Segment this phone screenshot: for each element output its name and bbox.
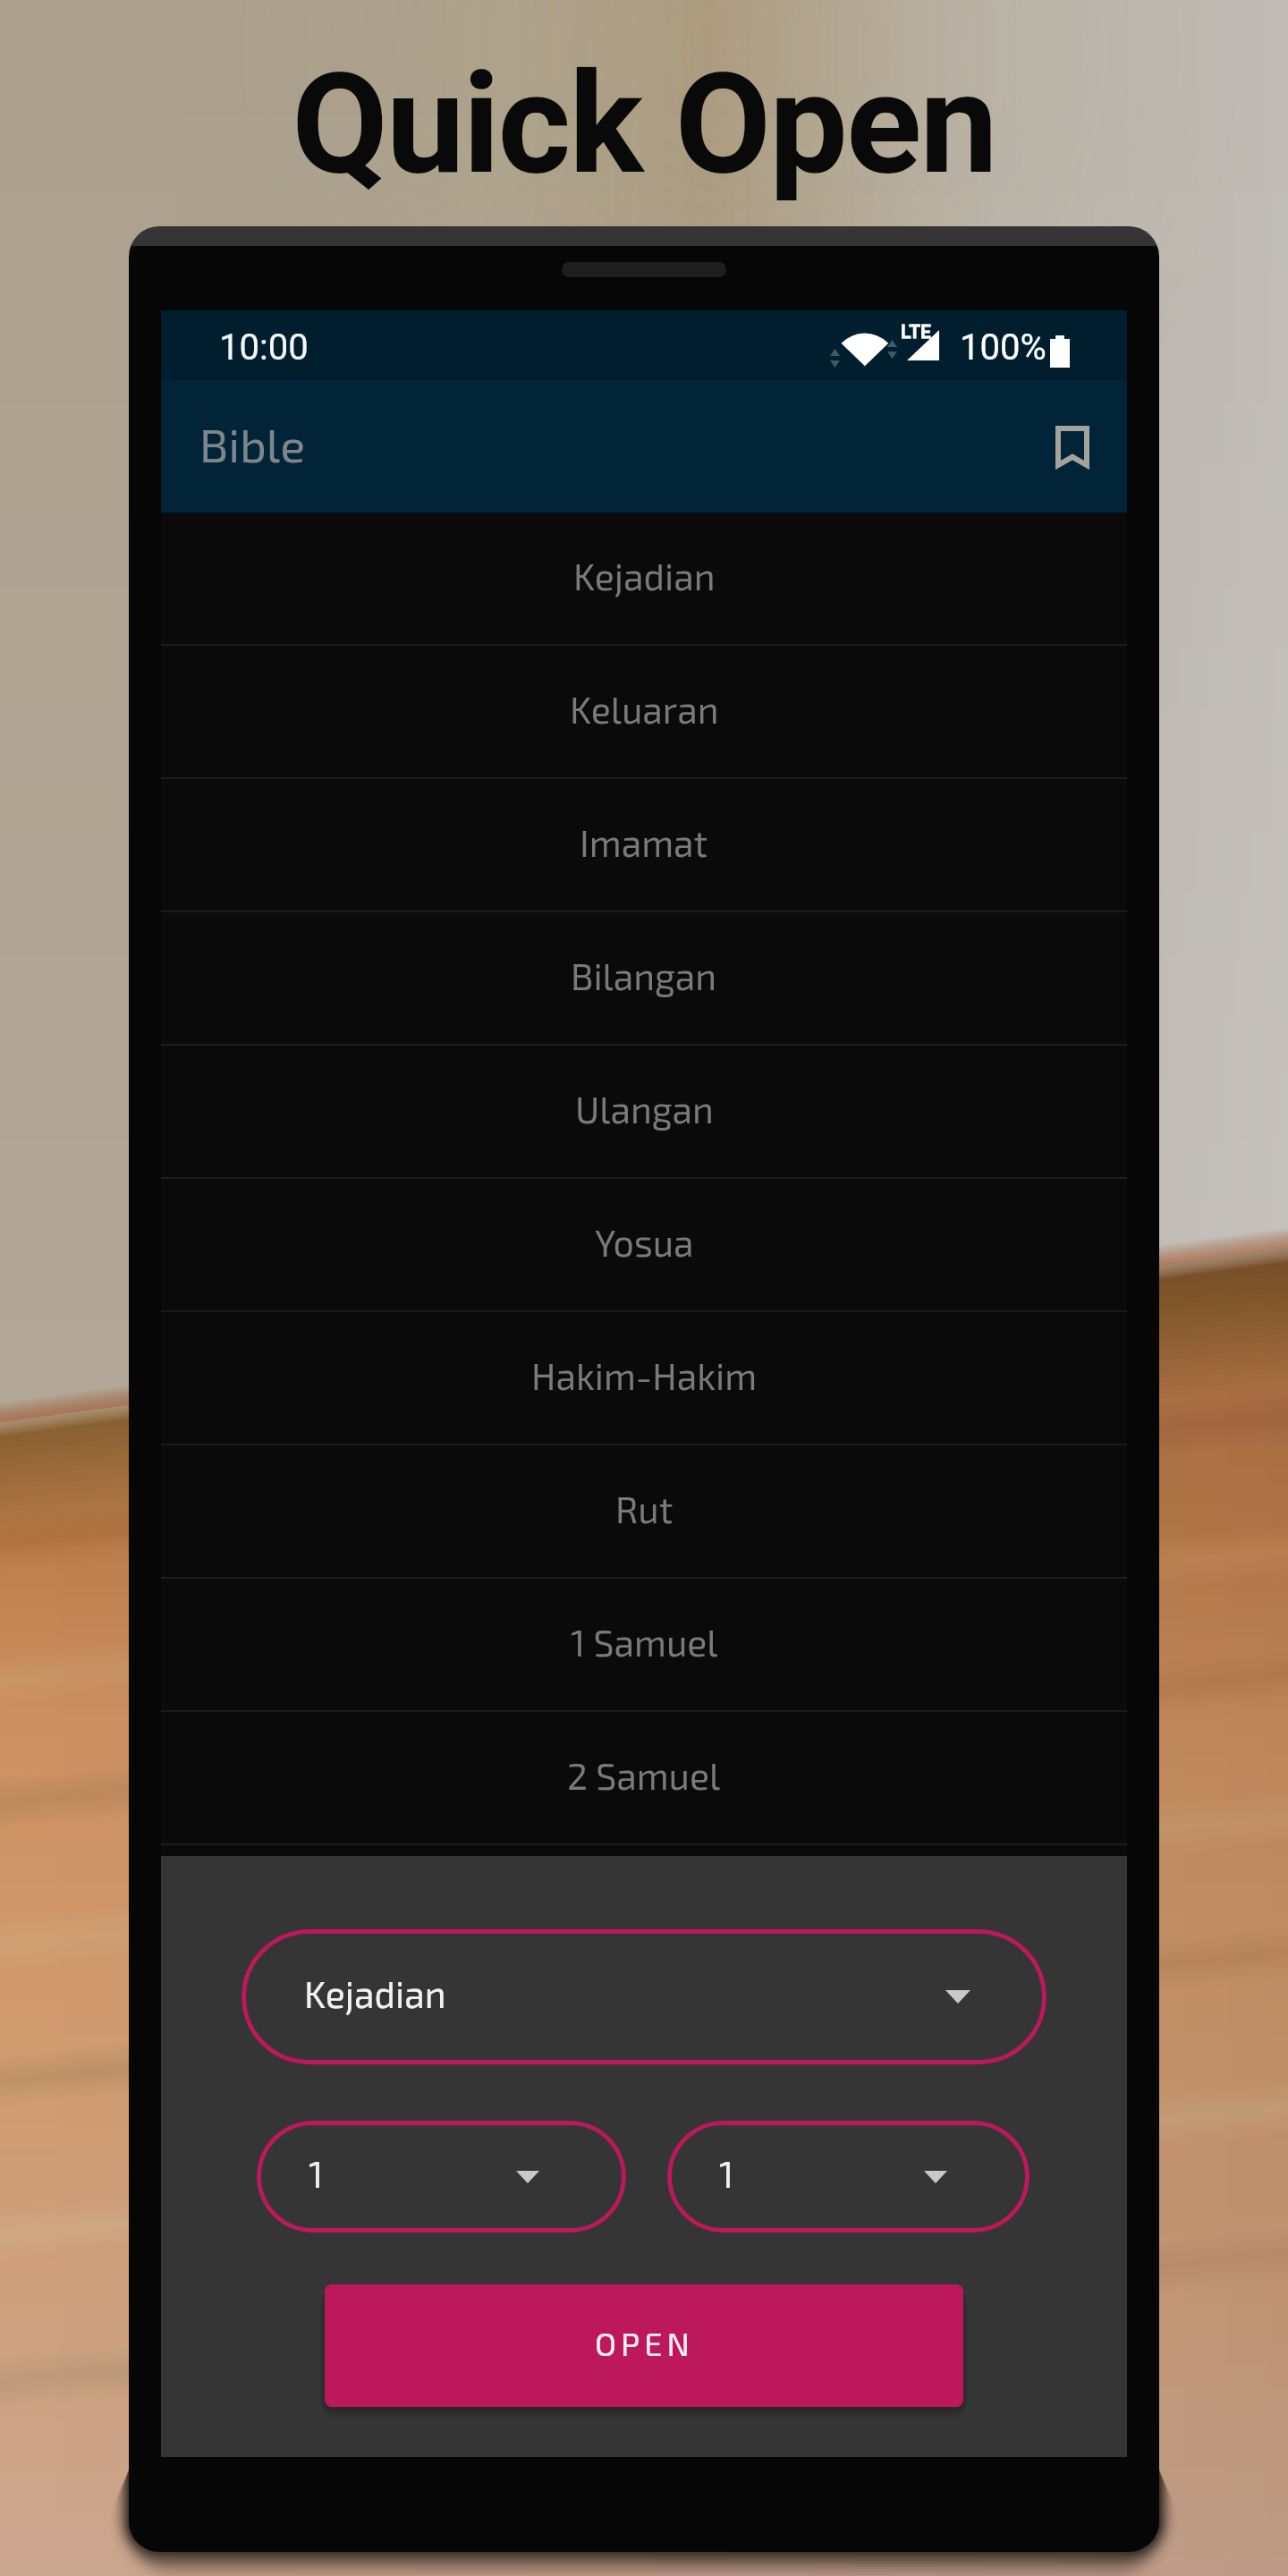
staticText: Bilangan [571,953,717,997]
button[interactable]: Yosua [161,1179,1127,1312]
button[interactable]: OPEN [325,2284,963,2407]
button[interactable]: 2 Samuel [161,1712,1127,1845]
button[interactable]: Bilangan [161,912,1127,1046]
button[interactable]: Kejadian [161,513,1127,646]
staticText: Kejadian [304,1971,446,2015]
button[interactable]: Ulangan [161,1046,1127,1179]
staticText: Ulangan [575,1087,714,1131]
staticText: Hakim-Hakim [531,1353,758,1397]
button[interactable]: 1 [667,2121,1030,2233]
staticText: 100% [960,326,1046,369]
button[interactable]: Hakim-Hakim [161,1312,1127,1445]
staticText: Yosua [595,1220,694,1264]
button[interactable]: Keluaran [161,646,1127,779]
button[interactable]: Kejadian [241,1929,1046,2064]
button[interactable]: Imamat [161,779,1127,912]
staticText: 1 Samuel [571,1620,718,1664]
staticText: LTE [901,321,931,343]
staticText: 2 Samuel [567,1753,721,1797]
staticText: 10:00 [219,326,309,369]
staticText: Quick Open [292,42,996,206]
staticText: Rut [615,1487,674,1530]
button[interactable]: Rut [161,1445,1127,1579]
staticText: Imamat [580,820,708,864]
staticText: 1 [719,2151,734,2195]
staticText: Kejadian [573,554,716,597]
button[interactable]: 1 [257,2121,626,2233]
button[interactable]: Bookmarks [1028,402,1117,491]
staticText: OPEN [595,2324,694,2362]
button[interactable]: 1 Samuel [161,1579,1127,1712]
staticText: Bible [199,416,306,471]
staticText: 1 [309,2151,324,2195]
staticText: Keluaran [570,687,719,731]
